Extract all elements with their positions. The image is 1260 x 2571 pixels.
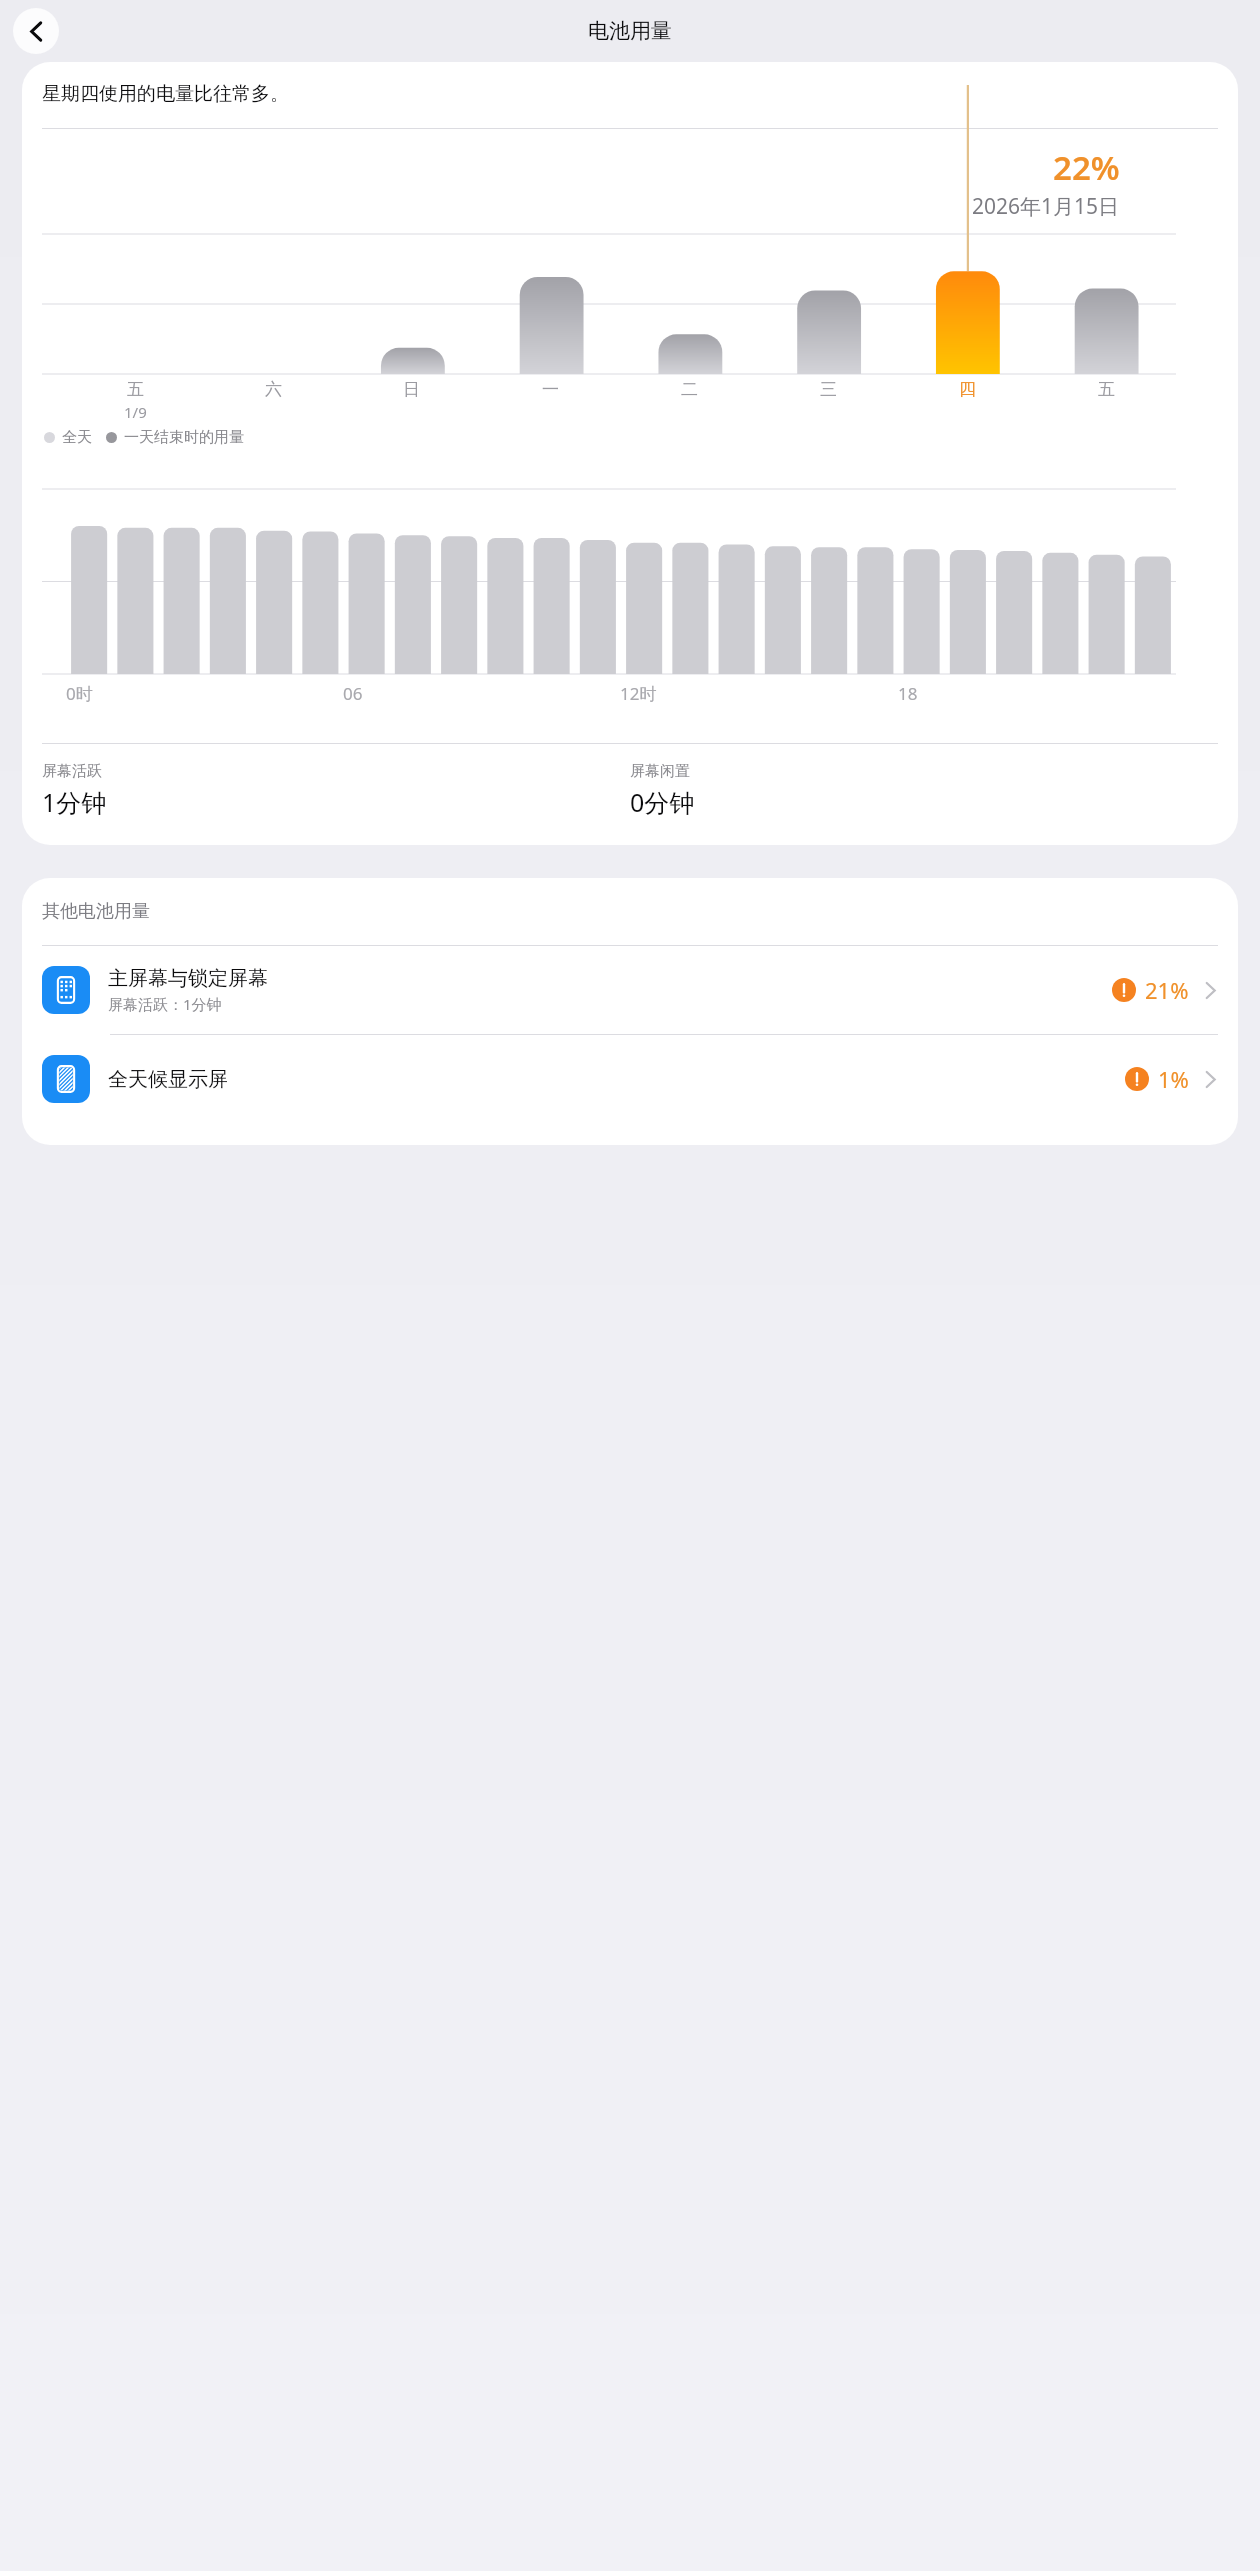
staticText: 屏幕闲置 (630, 762, 690, 781)
staticText: 12时 (620, 682, 657, 705)
staticText: 六 (265, 379, 282, 400)
staticText: 全天 (62, 428, 92, 447)
button[interactable]: Back (13, 8, 59, 54)
staticText: 四 (959, 379, 976, 400)
staticText: 日 (403, 379, 420, 400)
staticText: 五 (1098, 379, 1115, 400)
staticText: 18 (898, 682, 918, 705)
staticText: 22% (1053, 145, 1120, 190)
staticText: 电池用量 (588, 18, 672, 44)
staticText: 06 (343, 682, 363, 705)
staticText: 1/9 (124, 402, 147, 422)
staticText: 21% (1145, 975, 1189, 1005)
staticText: 0分钟 (630, 785, 695, 819)
staticText: 1分钟 (42, 785, 107, 819)
staticText: 全天候显示屏 (108, 1067, 228, 1092)
button[interactable]: 全天候显示屏 (22, 1035, 1238, 1123)
staticText: 0时 (66, 682, 93, 705)
staticText: 屏幕活跃 (42, 762, 102, 781)
staticText: 星期四使用的电量比往常多。 (42, 82, 289, 106)
staticText: 二 (681, 379, 698, 400)
staticText: 其他电池用量 (42, 900, 150, 923)
staticText: 一天结束时的用量 (124, 428, 244, 447)
staticText: 2026年1月15日 (972, 192, 1120, 221)
button[interactable]: 主屏幕与锁定屏幕 (22, 946, 1238, 1034)
staticText: 五 (127, 379, 144, 400)
staticText: 1% (1158, 1064, 1189, 1094)
staticText: 主屏幕与锁定屏幕 (108, 966, 268, 991)
staticText: 三 (820, 379, 837, 400)
staticText: 屏幕活跃：1分钟 (108, 994, 222, 1014)
staticText: 一 (542, 379, 559, 400)
